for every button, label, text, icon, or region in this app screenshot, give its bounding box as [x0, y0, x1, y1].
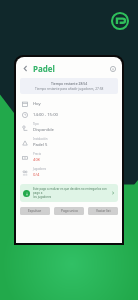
button[interactable]: Tiempo restante 28:54 — [20, 78, 118, 94]
staticText: Tipo — [33, 122, 39, 126]
staticText: Padel 5 — [33, 142, 48, 148]
staticText: Expulsar — [28, 209, 42, 213]
staticText: Disponible — [33, 127, 54, 133]
staticText: Precio — [33, 152, 42, 156]
staticText: Vaciar list — [96, 209, 111, 213]
button[interactable]: Expulsar — [20, 207, 50, 215]
staticText: Tiempo restante para añadir jugadores, 2… — [35, 87, 104, 91]
button[interactable]: Back — [21, 64, 30, 73]
staticText: Pago unico — [61, 209, 78, 213]
button[interactable]: Vaciar list — [88, 207, 118, 215]
staticText: 14:00 - 15:00 — [33, 112, 58, 118]
button[interactable]: Logo — [112, 13, 128, 29]
staticText: 0/4 — [33, 172, 40, 178]
button[interactable]: Information — [108, 64, 117, 73]
staticText: los jugadores — [33, 195, 52, 199]
button[interactable]: Este pago a realizar es que decides no e… — [20, 184, 118, 202]
staticText: Tiempo restante 28:54 — [51, 81, 88, 86]
staticText: Jugadores — [33, 167, 47, 171]
staticText: Padel — [33, 63, 55, 74]
staticText: Este pago a realizar es que decides no e… — [33, 187, 111, 195]
staticText: Hoy — [33, 101, 41, 107]
staticText: 40€ — [33, 157, 41, 163]
button[interactable]: Pago unico — [54, 207, 84, 215]
staticText: Instalación — [33, 137, 48, 141]
